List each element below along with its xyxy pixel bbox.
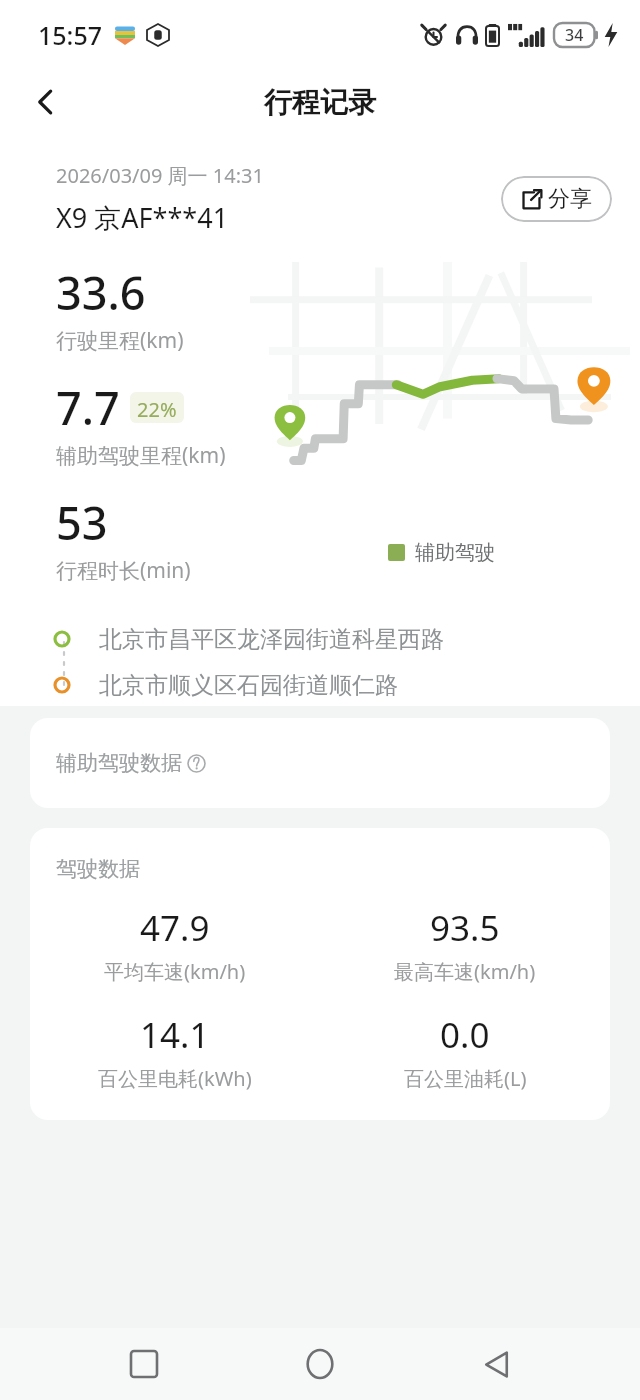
staticText: 最高车速(km/h) — [394, 958, 536, 985]
staticText: X9 京AF***41 — [56, 199, 229, 236]
staticText: 驾驶数据 — [56, 856, 140, 882]
staticText: 北京市昌平区龙泽园街道科星西路 — [99, 625, 444, 654]
staticText: 47.9 — [140, 904, 210, 952]
staticText: 百公里油耗(L) — [404, 1065, 527, 1092]
staticText: 辅助驾驶数据 — [56, 750, 182, 776]
staticText: 平均车速(km/h) — [104, 958, 246, 985]
staticText: 34 — [565, 24, 584, 46]
staticText: 北京市顺义区石园街道顺仁路 — [99, 671, 398, 700]
button[interactable]: 辅助驾驶数据 — [30, 718, 610, 808]
button[interactable]: Back — [18, 74, 74, 130]
staticText: 93.5 — [430, 904, 500, 952]
staticText: 2026/03/09 周一 14:31 — [56, 162, 264, 189]
button[interactable]: Back — [464, 1332, 528, 1396]
staticText: 15:57 — [38, 18, 103, 52]
staticText: 14.1 — [140, 1011, 210, 1059]
staticText: 33.6 — [56, 262, 146, 323]
button[interactable]: Home — [288, 1332, 352, 1396]
staticText: 行驶里程(km) — [56, 326, 184, 355]
staticText: 行程时长(min) — [56, 556, 191, 585]
staticText: 辅助驾驶 — [415, 540, 495, 565]
staticText: 百公里电耗(kWh) — [98, 1065, 252, 1092]
staticText: 7.7 — [56, 377, 120, 438]
staticText: 22% — [137, 396, 177, 423]
staticText: 行程记录 — [264, 85, 376, 120]
button[interactable]: Recent apps — [112, 1332, 176, 1396]
staticText: 53 — [56, 492, 108, 553]
staticText: 分享 — [548, 185, 592, 213]
button[interactable]: 分享 — [501, 176, 612, 222]
staticText: 辅助驾驶里程(km) — [56, 441, 226, 470]
staticText: 0.0 — [440, 1011, 490, 1059]
